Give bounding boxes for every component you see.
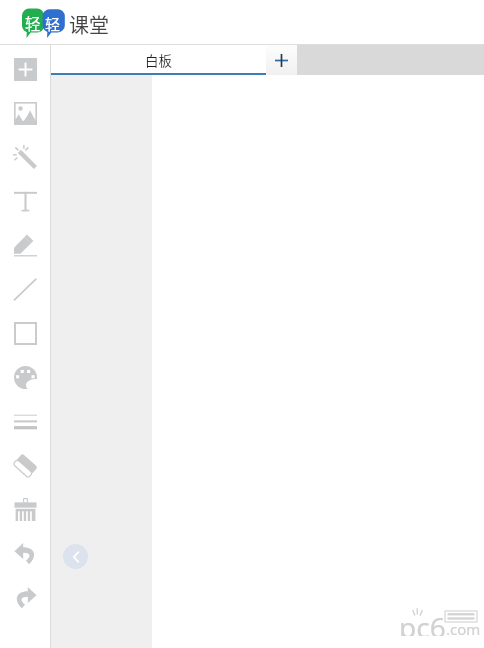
staticText: pc6 — [399, 608, 446, 636]
button[interactable]: Collapse panel — [63, 544, 88, 569]
staticText: .com — [446, 619, 481, 639]
staticText: 课堂 — [69, 10, 109, 39]
button[interactable]: Undo — [0, 531, 50, 575]
button[interactable]: Magic wand — [0, 135, 50, 179]
button[interactable]: Rectangle — [0, 311, 50, 355]
button[interactable]: Clear — [0, 487, 50, 531]
button[interactable]: Redo — [0, 575, 50, 619]
button[interactable]: Stroke width — [0, 399, 50, 443]
button[interactable]: Line — [0, 267, 50, 311]
button[interactable]: 白板 — [51, 45, 266, 75]
button[interactable]: Insert image — [0, 91, 50, 135]
button[interactable]: Text — [0, 179, 50, 223]
button[interactable]: Add slide — [0, 47, 50, 91]
button[interactable]: Palette — [0, 355, 50, 399]
button[interactable]: Pencil — [0, 223, 50, 267]
button[interactable]: Eraser — [0, 443, 50, 487]
button[interactable]: New whiteboard — [266, 45, 297, 75]
staticText: 轻 — [45, 13, 61, 35]
staticText: 轻 — [25, 12, 41, 34]
staticText: 白板 — [145, 50, 172, 70]
